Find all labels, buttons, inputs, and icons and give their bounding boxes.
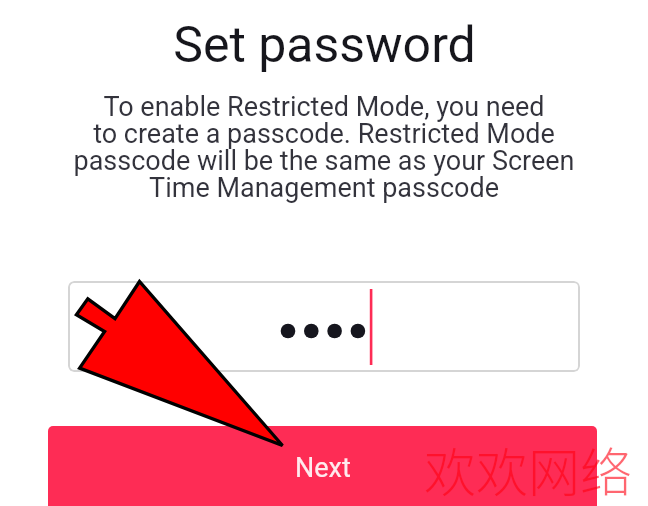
- staticText: To enable Restricted Mode, you need to c…: [0, 91, 648, 204]
- staticText: Next: [295, 452, 351, 484]
- button[interactable]: Next: [48, 426, 597, 506]
- button[interactable]: Passcode entry field: [68, 281, 580, 372]
- staticText: Set password: [173, 16, 476, 75]
- staticText: 欢欢网络: [424, 432, 633, 506]
